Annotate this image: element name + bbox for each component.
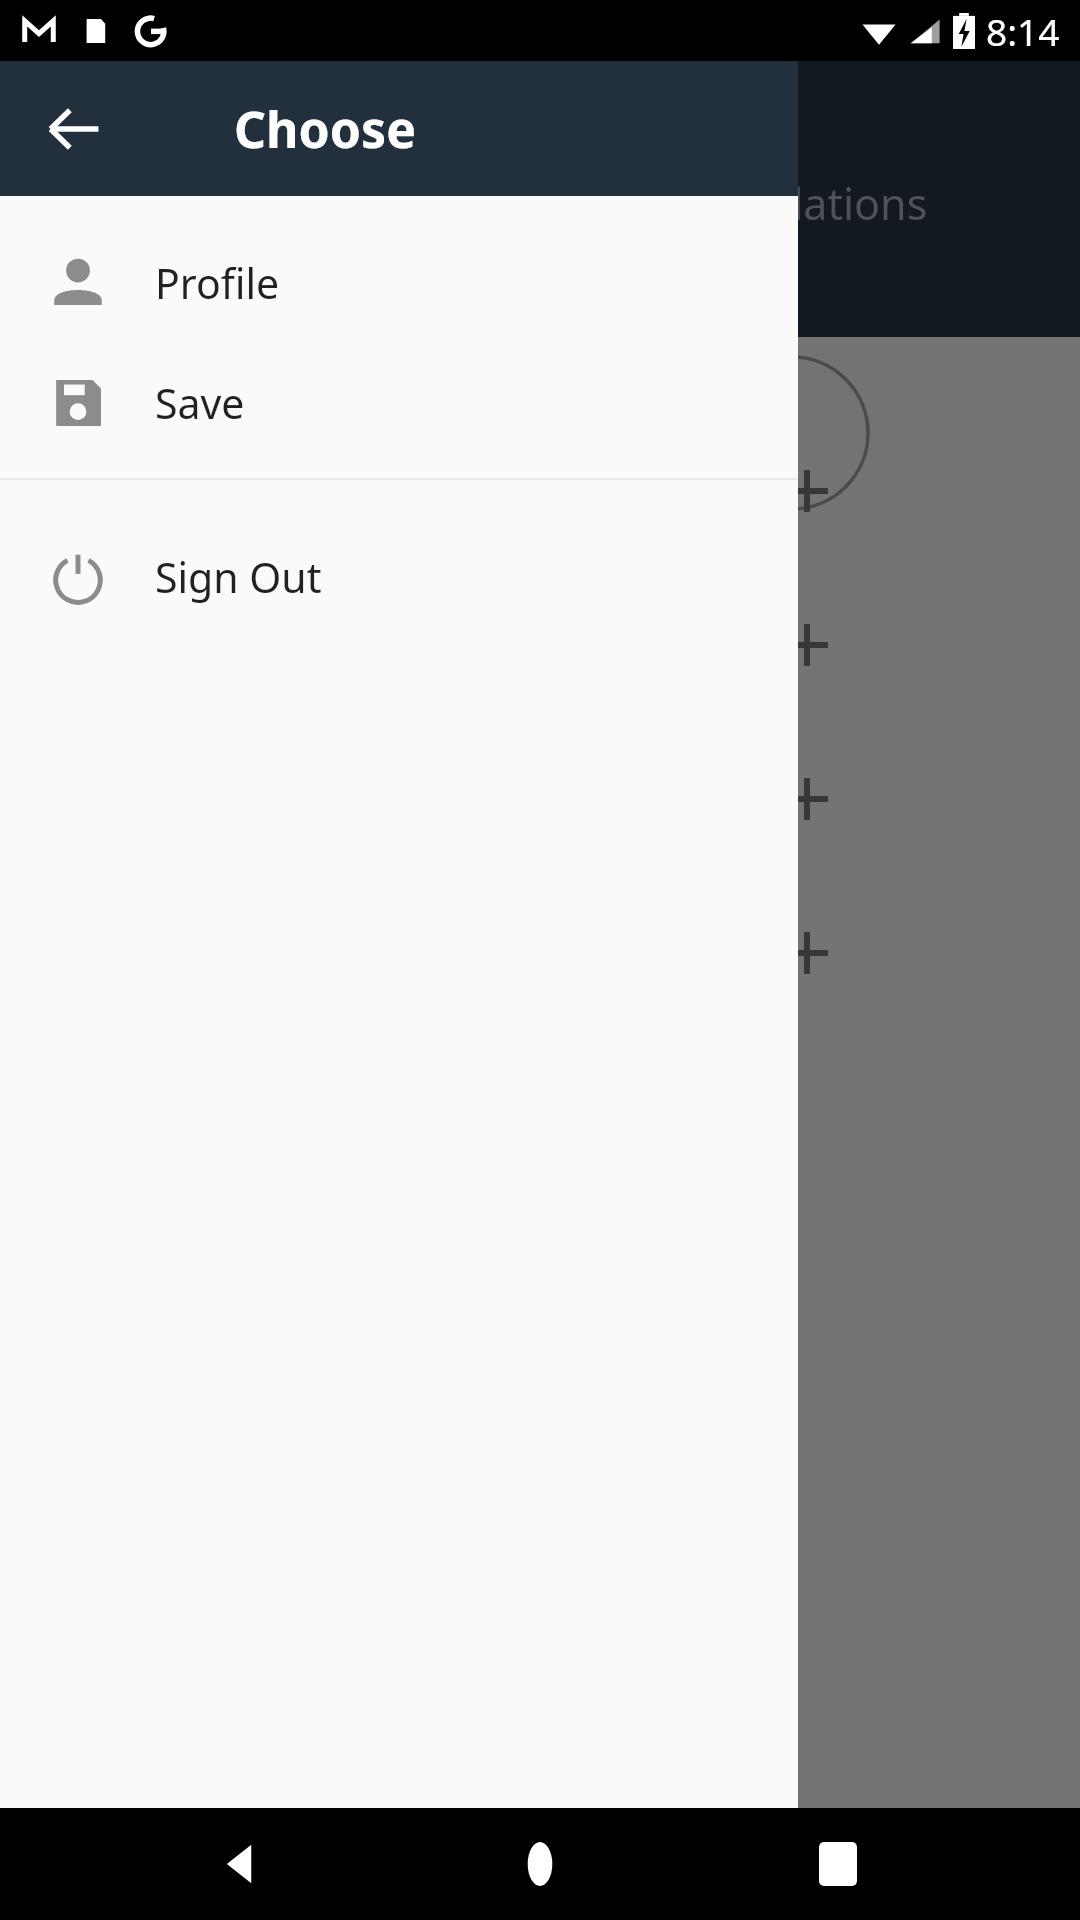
staticText: Choose: [234, 95, 417, 163]
button[interactable]: Profile: [0, 235, 798, 331]
button[interactable]: Increase: [772, 610, 842, 680]
button[interactable]: Back: [186, 1808, 298, 1920]
button[interactable]: Save: [0, 355, 798, 451]
staticText: Recommendations: [548, 174, 928, 233]
button[interactable]: Increase: [772, 456, 842, 526]
button[interactable]: Increase: [772, 764, 842, 834]
button[interactable]: Sign Out: [0, 529, 798, 625]
staticText: Profile: [155, 255, 280, 311]
button[interactable]: Back: [26, 81, 122, 177]
button[interactable]: Recents: [782, 1808, 894, 1920]
staticText: 8:14: [986, 6, 1060, 56]
button[interactable]: Increase: [772, 918, 842, 988]
button[interactable]: Home: [484, 1808, 596, 1920]
staticText: Sign Out: [155, 549, 322, 605]
staticText: Save: [155, 375, 245, 431]
